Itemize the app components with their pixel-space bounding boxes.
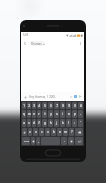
staticText: # xyxy=(80,104,82,108)
button[interactable]: n xyxy=(57,128,62,136)
button[interactable]: 7 xyxy=(54,102,59,109)
staticText: o xyxy=(68,112,70,116)
button[interactable]: 5 xyxy=(42,102,47,109)
staticText: 6 xyxy=(50,104,52,108)
button[interactable] xyxy=(68,137,74,145)
button[interactable]: m xyxy=(63,128,68,136)
button[interactable]: b xyxy=(51,128,56,136)
button[interactable]: ' xyxy=(78,119,83,127)
staticText: Hey thomas, ₹ 200/- xyxy=(29,95,57,99)
staticText: r xyxy=(38,112,40,116)
button[interactable]: 2 xyxy=(27,102,31,109)
staticText: n xyxy=(59,130,61,134)
staticText: , xyxy=(38,139,39,143)
button[interactable]: h xyxy=(48,119,53,127)
staticText: 3 xyxy=(33,104,35,108)
staticText: 4 xyxy=(38,104,40,108)
button[interactable] xyxy=(22,128,27,136)
button[interactable]: g xyxy=(42,119,47,127)
button[interactable]: a xyxy=(22,119,26,127)
button[interactable]: 8 xyxy=(60,102,65,109)
staticText: d xyxy=(33,121,35,125)
staticText: h xyxy=(50,121,52,125)
button[interactable]: l xyxy=(66,119,71,127)
staticText: q xyxy=(23,112,25,116)
button[interactable]: y xyxy=(48,110,53,118)
staticText: u xyxy=(56,112,58,116)
button[interactable]: x xyxy=(33,128,38,136)
staticText: ' xyxy=(80,121,81,125)
button[interactable]: e xyxy=(32,110,36,118)
button[interactable]: Send xyxy=(78,94,83,99)
staticText: x xyxy=(35,130,37,134)
button[interactable]: o xyxy=(66,110,71,118)
staticText: m xyxy=(64,130,67,134)
staticText: w xyxy=(28,112,31,116)
button[interactable]: t xyxy=(42,110,47,118)
button[interactable]: Back xyxy=(22,39,28,47)
button[interactable]: c xyxy=(39,128,44,136)
button[interactable]: More options xyxy=(78,39,83,47)
staticText: b xyxy=(53,130,55,134)
button[interactable]: d xyxy=(32,119,36,127)
button[interactable]: # xyxy=(78,102,83,109)
staticText: - xyxy=(80,112,81,116)
staticText: l xyxy=(68,121,69,125)
staticText: v xyxy=(47,130,49,134)
button[interactable]: 9 xyxy=(66,102,71,109)
button[interactable]: 6 xyxy=(48,102,53,109)
staticText: ?123 xyxy=(24,140,29,143)
button[interactable]: . xyxy=(61,137,67,145)
button[interactable] xyxy=(75,128,83,136)
staticText: 5:03 xyxy=(23,33,29,37)
button[interactable]: k xyxy=(60,119,65,127)
button[interactable]: 3 xyxy=(32,102,36,109)
staticText: ? xyxy=(71,130,73,134)
staticText: t xyxy=(44,112,46,116)
button[interactable]: Sticker xyxy=(68,94,73,99)
button[interactable] xyxy=(31,137,35,145)
button[interactable]: Add attachment xyxy=(23,95,27,99)
button[interactable]: w xyxy=(27,110,31,118)
staticText: e xyxy=(33,112,35,116)
button[interactable]: f xyxy=(37,119,41,127)
button[interactable]: v xyxy=(45,128,50,136)
button[interactable]: Thomas xyxy=(30,41,45,46)
staticText: 1 xyxy=(23,104,25,108)
button[interactable]: i xyxy=(60,110,65,118)
staticText: 7 xyxy=(56,104,58,108)
button[interactable]: 4 xyxy=(37,102,41,109)
staticText: p xyxy=(74,112,76,116)
button[interactable]: j xyxy=(54,119,59,127)
button[interactable]: ?123 xyxy=(22,137,30,145)
button[interactable]: Camera xyxy=(73,94,78,99)
button[interactable]: 1 xyxy=(22,102,26,109)
staticText: i xyxy=(62,112,63,116)
staticText: 5 xyxy=(44,104,46,108)
staticText: a xyxy=(23,121,25,125)
button[interactable]: z xyxy=(28,128,32,136)
button[interactable]: q xyxy=(22,110,26,118)
button[interactable]: 0 xyxy=(72,102,77,109)
staticText: 2 xyxy=(28,104,30,108)
staticText: 8 xyxy=(62,104,64,108)
staticText: f xyxy=(38,121,40,125)
staticText: s xyxy=(28,121,30,125)
staticText: c xyxy=(41,130,43,134)
staticText: : xyxy=(74,121,75,125)
staticText: g xyxy=(44,121,46,125)
staticText: k xyxy=(62,121,64,125)
button[interactable]: - xyxy=(78,110,83,118)
staticText: z xyxy=(29,130,31,134)
button[interactable]: : xyxy=(72,119,77,127)
button[interactable]: ? xyxy=(69,128,74,136)
button[interactable]: , xyxy=(36,137,40,145)
button[interactable] xyxy=(75,137,83,145)
staticText: y xyxy=(50,112,52,116)
button[interactable]: s xyxy=(27,119,31,127)
button[interactable]: r xyxy=(37,110,41,118)
staticText: 9 xyxy=(68,104,70,108)
button[interactable]: p xyxy=(72,110,77,118)
button[interactable]: u xyxy=(54,110,59,118)
